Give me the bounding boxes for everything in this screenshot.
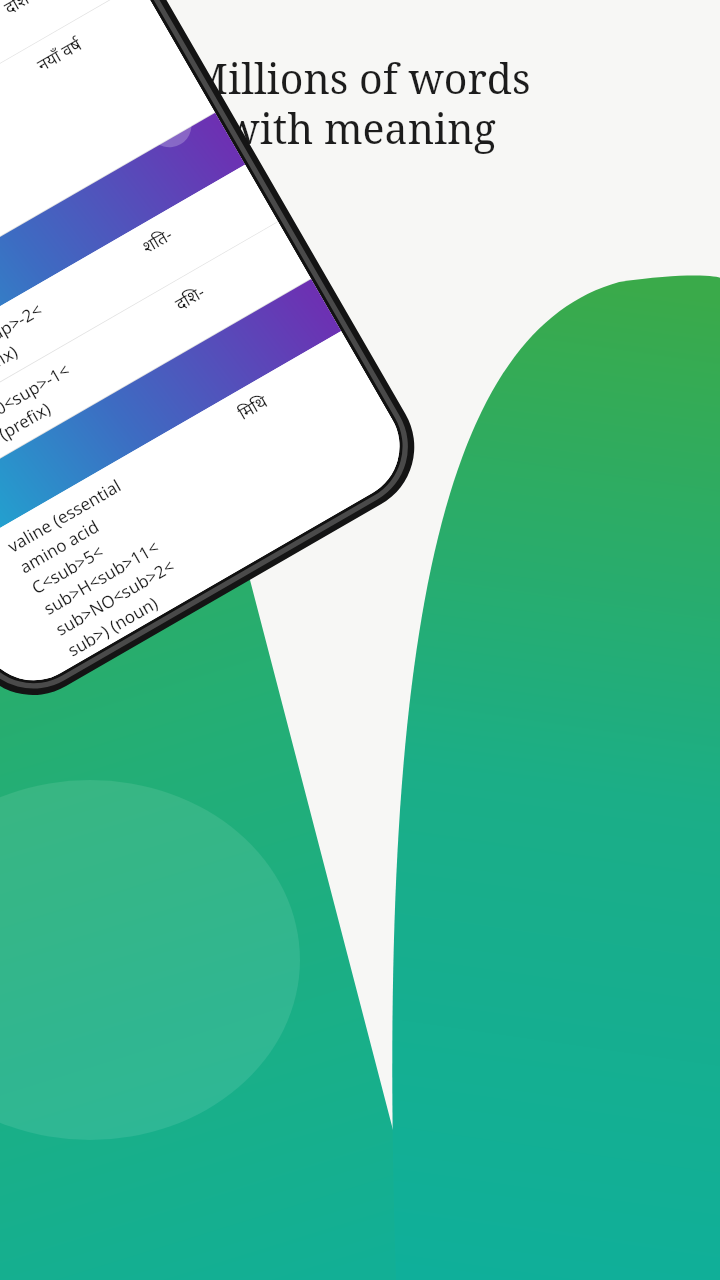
button[interactable]: Millions of words with meaning bbox=[0, 0, 720, 1280]
